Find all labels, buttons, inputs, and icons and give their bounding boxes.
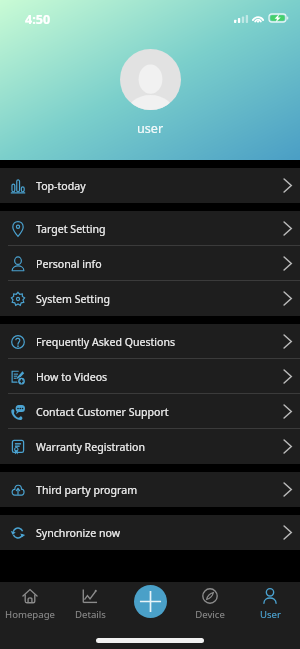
- button[interactable]: Third party program: [0, 472, 300, 507]
- button[interactable]: Add: [134, 585, 167, 618]
- button[interactable]: Device: [180, 588, 240, 621]
- staticText: Device: [195, 608, 225, 621]
- staticText: Warranty Registration: [36, 440, 145, 454]
- button[interactable]: User: [240, 588, 300, 621]
- staticText: System Setting: [36, 292, 110, 306]
- staticText: User: [260, 608, 281, 621]
- button[interactable]: Homepage: [0, 588, 60, 621]
- staticText: user: [137, 120, 164, 137]
- button[interactable]: Frequently Asked Questions: [0, 324, 300, 359]
- staticText: Top-today: [36, 179, 86, 193]
- button[interactable]: Contact Customer Support: [0, 394, 300, 429]
- staticText: 4:50: [25, 11, 51, 28]
- staticText: Contact Customer Support: [36, 405, 169, 419]
- button[interactable]: Warranty Registration: [0, 429, 300, 464]
- staticText: Synchronize now: [36, 526, 121, 540]
- button[interactable]: Personal info: [0, 246, 300, 281]
- button[interactable]: Details: [60, 588, 120, 621]
- button[interactable]: Top-today: [0, 168, 300, 203]
- staticText: Homepage: [5, 608, 55, 621]
- staticText: Details: [75, 608, 106, 621]
- button[interactable]: Target Setting: [0, 211, 300, 246]
- button[interactable]: Synchronize now: [0, 515, 300, 550]
- staticText: Target Setting: [36, 222, 106, 236]
- button[interactable]: System Setting: [0, 281, 300, 316]
- button[interactable]: How to Videos: [0, 359, 300, 394]
- staticText: Personal info: [36, 257, 102, 271]
- staticText: Frequently Asked Questions: [36, 335, 176, 349]
- staticText: Third party program: [36, 483, 138, 497]
- staticText: How to Videos: [36, 370, 108, 384]
